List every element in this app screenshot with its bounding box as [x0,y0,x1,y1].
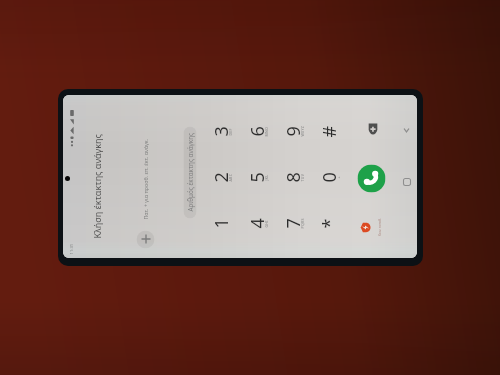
staticText: # [316,125,341,137]
staticText: 8 [280,171,305,182]
staticText: Κλήση έκτακτης ανάγκης [90,133,102,238]
staticText: TUV [299,173,304,181]
staticText: 1 [208,217,233,228]
staticText: 7 [280,217,305,228]
staticText: 3 [208,125,233,136]
button[interactable]: Home [396,172,416,192]
button[interactable]: 6 [241,109,275,153]
button[interactable]: 5 [241,155,275,199]
button[interactable]: * [313,201,347,245]
staticText: 4 [244,217,269,228]
button[interactable]: 3 [205,109,239,153]
staticText: 6 [244,125,269,136]
button[interactable]: Call [357,164,385,192]
button[interactable]: Back [396,120,416,140]
staticText: GHI [263,219,268,227]
button[interactable]: Emergency sharing [360,214,382,240]
staticText: * [316,218,341,228]
staticText: ABC [227,173,232,181]
staticText: WXYZ [299,125,304,136]
button[interactable]: 7 [277,201,311,245]
button[interactable]: 9 [277,109,311,153]
staticText: DEF [227,127,232,135]
staticText: Πατ. + για προσθ. επ. έκτ. ανάγκ. [141,138,148,219]
button[interactable]: Αριθμός έκτακτης ανάγκης [183,126,196,218]
staticText: 11:31 [68,243,74,254]
staticText: PQRS [299,217,304,228]
button[interactable]: Emergency information [362,119,382,139]
staticText: JKL [263,174,268,180]
staticText: + [335,175,340,178]
button[interactable]: 1 [205,201,239,245]
staticText: Κοιν. τοποθ. [377,217,381,236]
button[interactable]: Add emergency contact [136,230,154,248]
staticText: 2 [208,171,233,182]
button[interactable]: 0 [313,155,347,199]
button[interactable]: 8 [277,155,311,199]
staticText: 5 [244,171,269,182]
staticText: Αριθμός έκτακτης ανάγκης [185,132,194,211]
button[interactable]: # [313,109,347,153]
button[interactable]: 4 [241,201,275,245]
staticText: MNO [263,126,268,136]
button[interactable]: 2 [205,155,239,199]
staticText: 0 [316,171,341,182]
staticText: 9 [280,125,305,136]
